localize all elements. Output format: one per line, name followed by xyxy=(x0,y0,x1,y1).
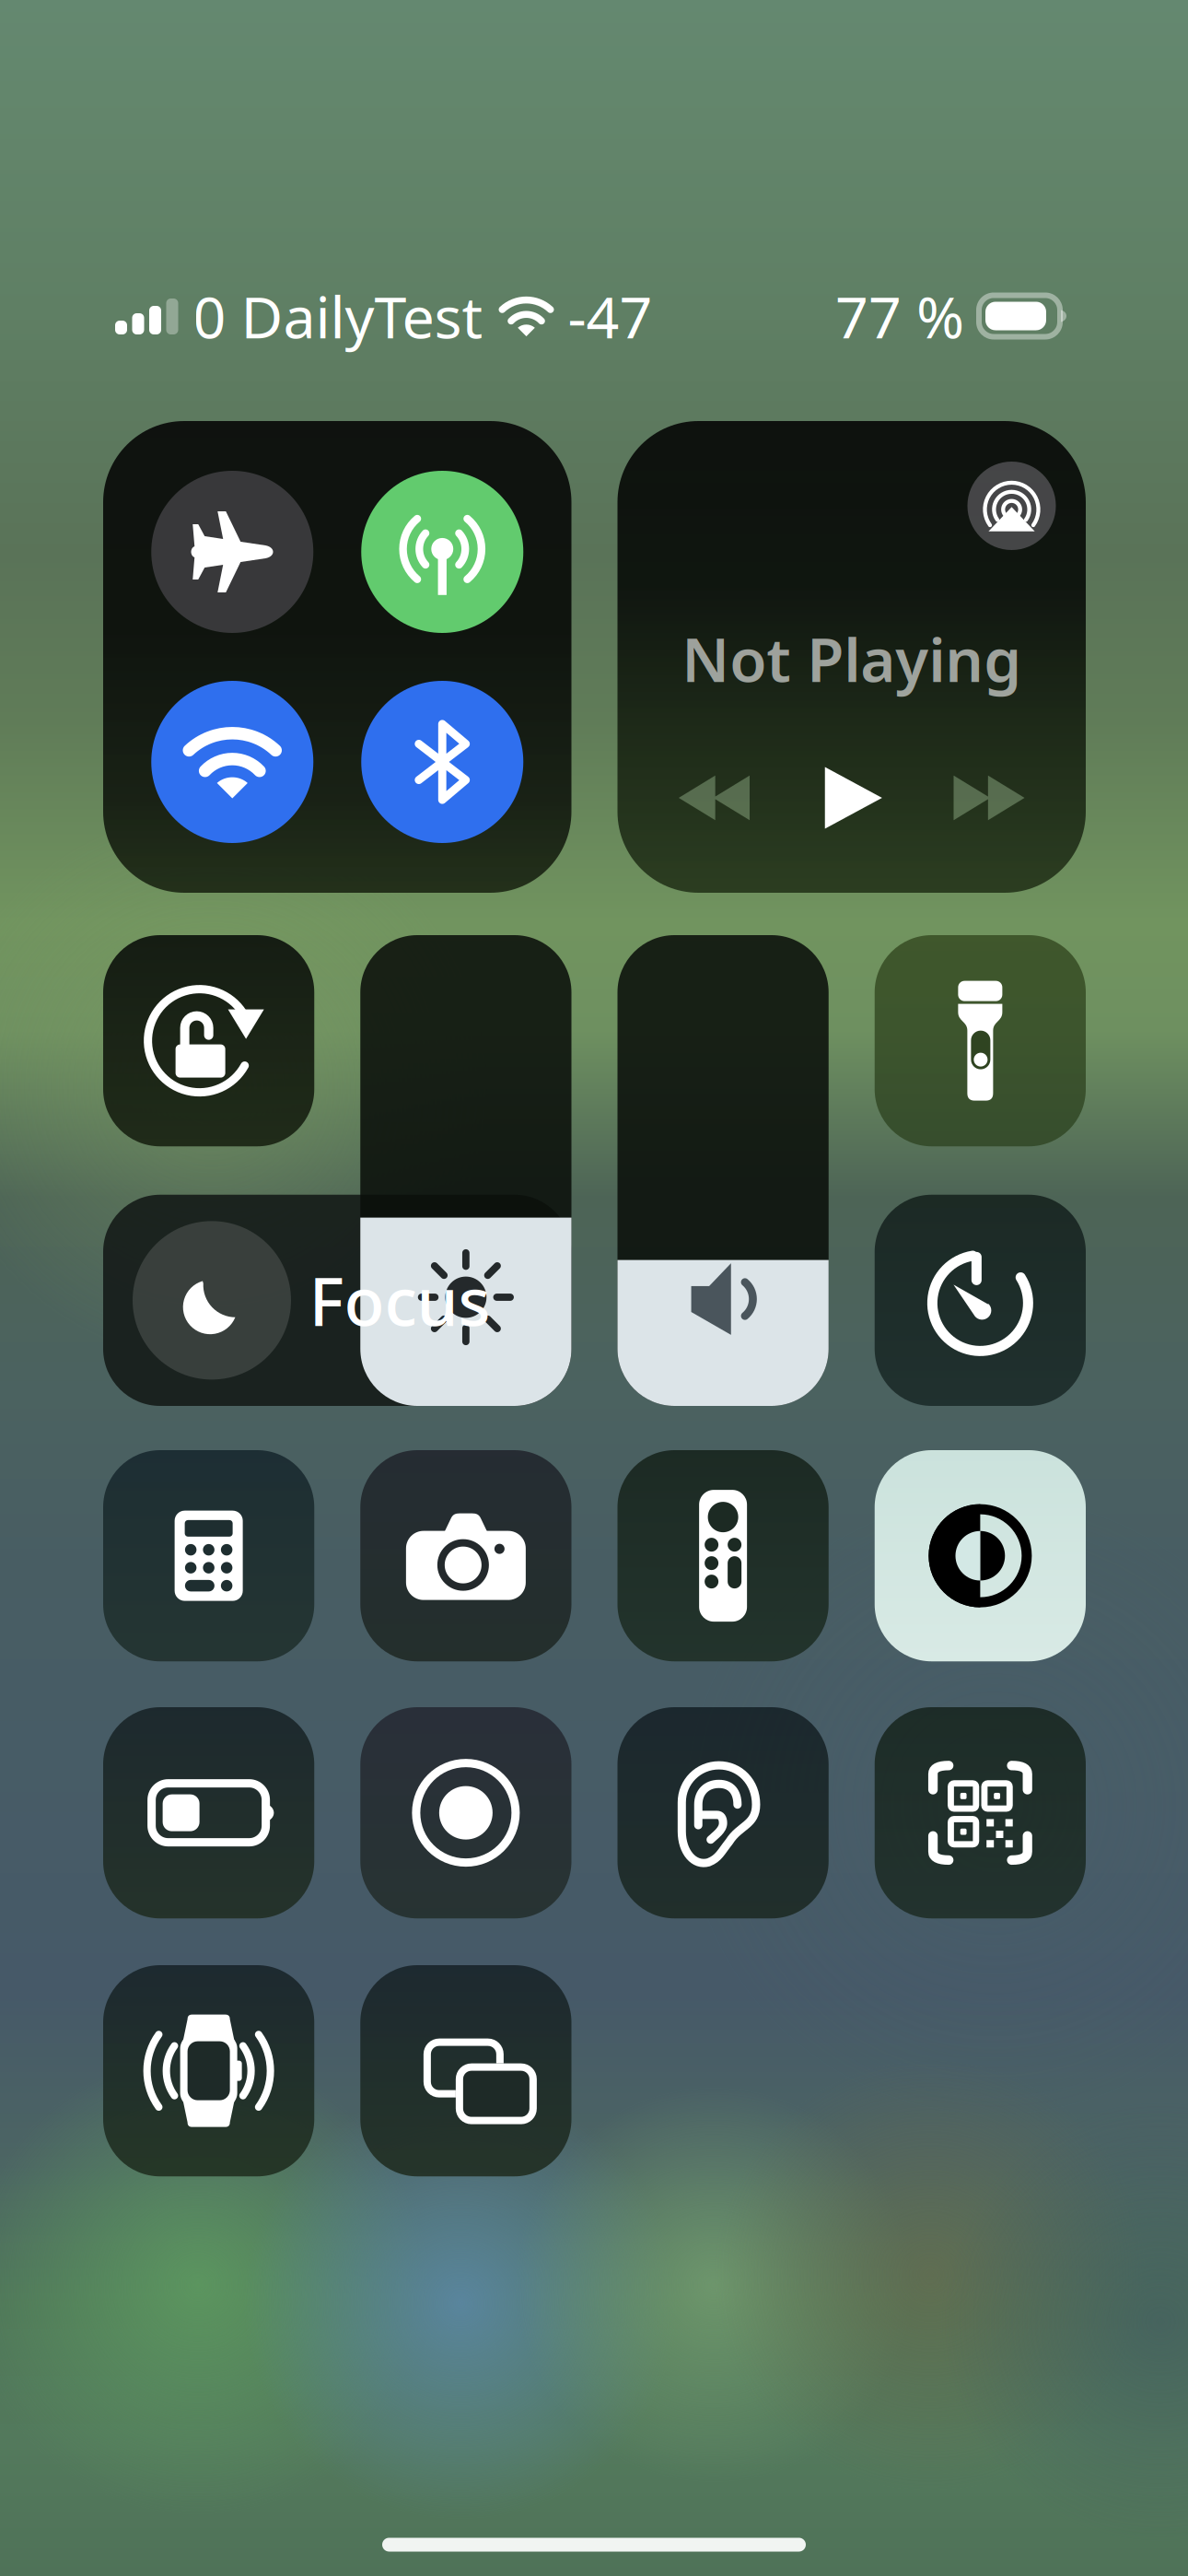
button[interactable]: Airplane Mode xyxy=(151,471,313,633)
button[interactable]: Bluetooth xyxy=(361,681,523,843)
button[interactable]: Apple TV Remote xyxy=(617,1450,829,1661)
button[interactable]: Camera xyxy=(360,1450,571,1661)
staticText: 0 DailyTest xyxy=(193,278,483,354)
staticText: Not Playing xyxy=(682,619,1021,699)
button[interactable]: Low Power Mode xyxy=(103,1707,314,1918)
button[interactable]: Flashlight xyxy=(875,935,1086,1146)
button[interactable]: Brightness xyxy=(360,935,571,1406)
button[interactable]: Timer xyxy=(875,1195,1086,1406)
button[interactable]: Calculator xyxy=(103,1450,314,1661)
button[interactable]: Fast Forward xyxy=(938,759,1040,837)
staticText: Focus xyxy=(309,1256,490,1344)
button[interactable]: Ping My Watch xyxy=(103,1965,314,2176)
staticText: -47 xyxy=(568,278,652,354)
button[interactable]: Play xyxy=(809,759,898,837)
button[interactable]: Focus xyxy=(103,1195,571,1406)
button[interactable]: Rotation Lock xyxy=(103,935,314,1146)
button[interactable]: AirPlay xyxy=(967,462,1056,550)
staticText: 77 % xyxy=(835,278,964,354)
button[interactable]: Rewind xyxy=(664,759,765,837)
button[interactable]: Screen Mirroring xyxy=(360,1965,571,2176)
button[interactable]: Dark Mode xyxy=(875,1450,1086,1661)
button[interactable]: Code Scanner xyxy=(875,1707,1086,1918)
button[interactable]: Cellular Data xyxy=(361,471,523,633)
button[interactable]: Hearing xyxy=(617,1707,829,1918)
button[interactable]: Wi-Fi xyxy=(151,681,313,843)
button[interactable]: Volume xyxy=(617,935,829,1406)
button[interactable]: Screen Recording xyxy=(360,1707,571,1918)
